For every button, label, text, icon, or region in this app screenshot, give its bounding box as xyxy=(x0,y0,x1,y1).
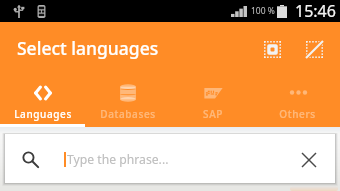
staticText: 15:46 xyxy=(295,0,336,22)
button[interactable]: Languages xyxy=(0,70,85,127)
staticText: Select languages xyxy=(17,36,159,60)
staticText: Type the phrase... xyxy=(67,151,169,168)
button[interactable]: SAP xyxy=(170,70,255,127)
staticText: Languages xyxy=(14,107,72,121)
staticText: Databases xyxy=(100,107,156,121)
button[interactable]: Select all xyxy=(251,25,293,67)
button[interactable]: Type the phrase... xyxy=(5,134,335,183)
button[interactable]: Deselect all xyxy=(293,25,335,67)
staticText: 100 % xyxy=(251,5,275,17)
button[interactable]: Clear search xyxy=(290,141,328,179)
button[interactable]: Others xyxy=(255,70,340,127)
staticText: Others xyxy=(279,107,316,121)
button[interactable]: Databases xyxy=(85,70,170,127)
staticText: SAP xyxy=(203,107,223,121)
